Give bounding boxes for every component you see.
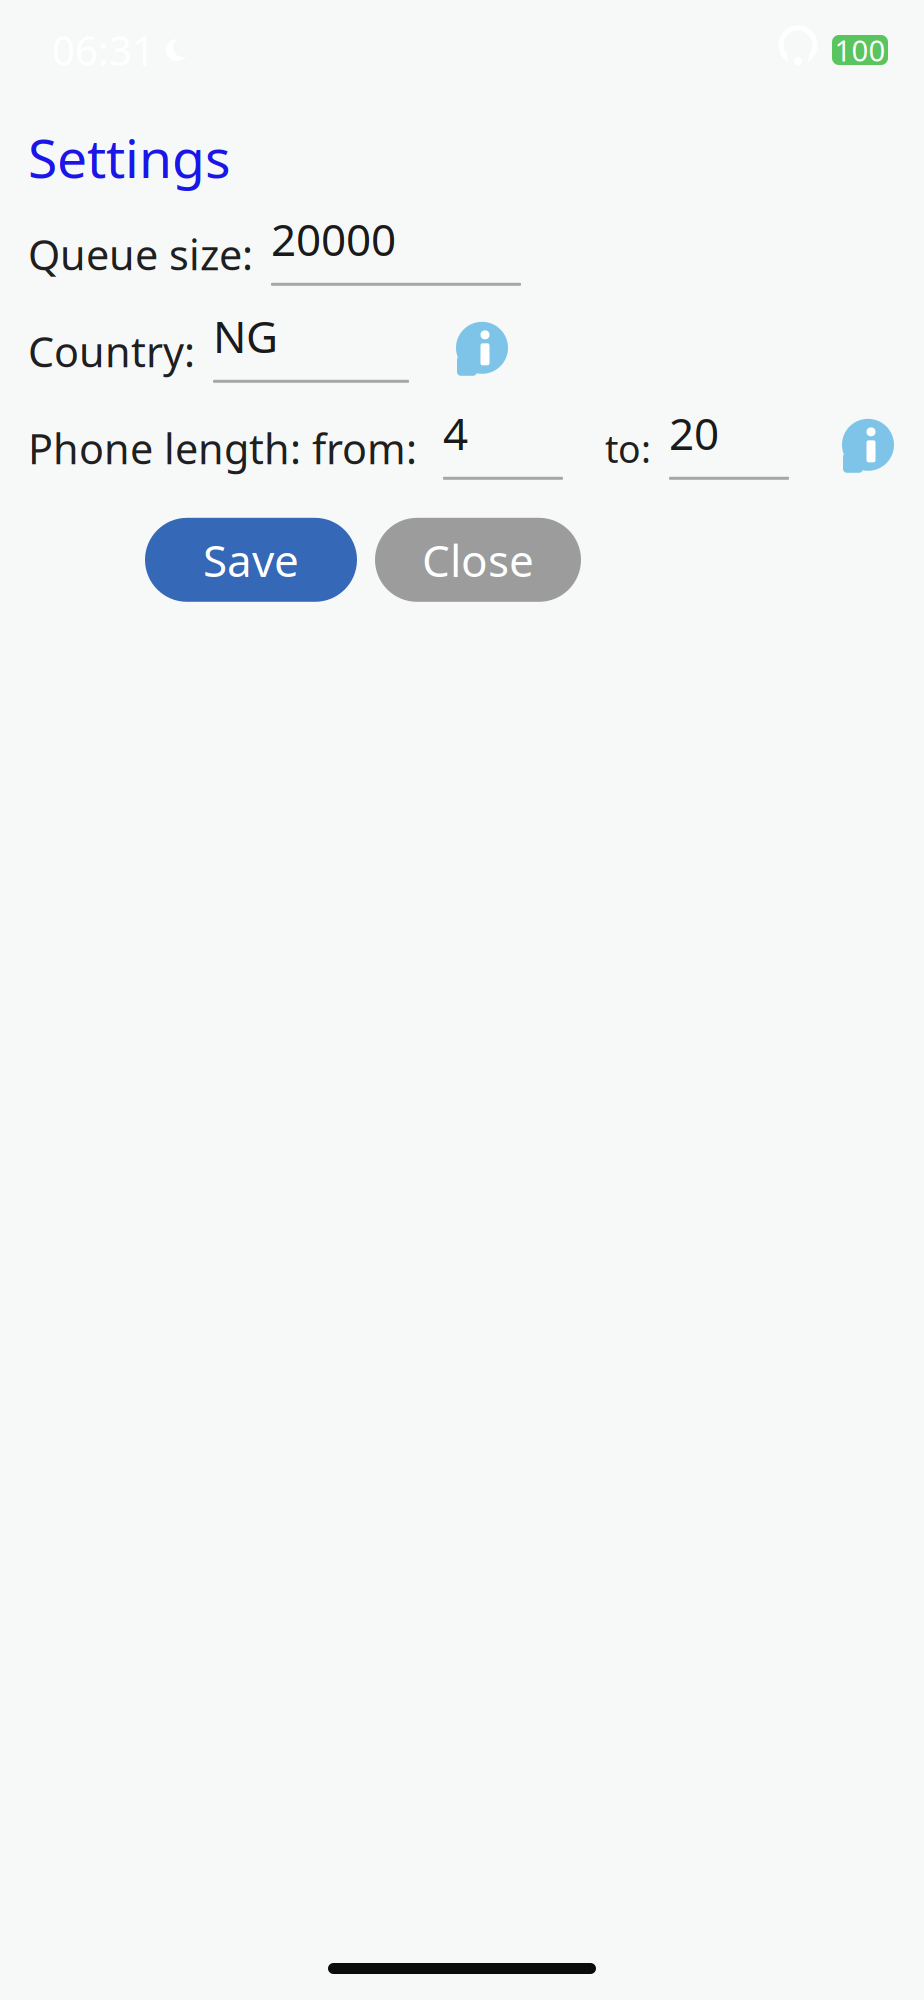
- button[interactable]: Phone length information: [837, 413, 899, 477]
- button[interactable]: Close: [375, 518, 581, 602]
- button[interactable]: Save: [145, 518, 357, 602]
- staticText: to:: [605, 424, 651, 473]
- staticText: 100: [834, 30, 885, 69]
- staticText: Phone length: from:: [28, 421, 417, 476]
- staticText: NG: [213, 307, 278, 365]
- staticText: Save: [203, 531, 299, 589]
- staticText: 20: [669, 404, 719, 462]
- staticText: Settings: [28, 122, 231, 193]
- staticText: Queue size:: [28, 227, 253, 282]
- staticText: Country:: [28, 324, 195, 379]
- staticText: 20000: [271, 210, 396, 268]
- button[interactable]: Country information: [451, 316, 513, 380]
- staticText: Close: [422, 531, 534, 589]
- staticText: 4: [443, 404, 468, 462]
